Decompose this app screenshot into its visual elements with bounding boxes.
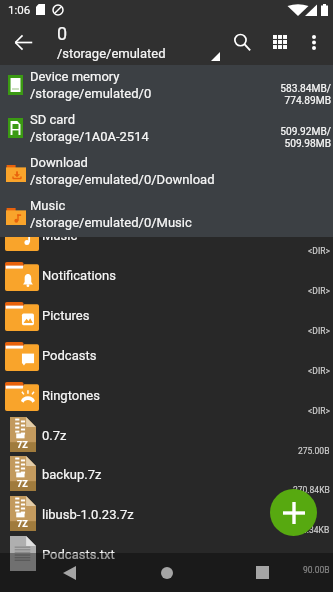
- staticText: 509.98MB: [284, 138, 331, 150]
- staticText: Device memory: [30, 69, 120, 84]
- staticText: Podcasts.txt: [42, 547, 115, 562]
- staticText: Download: [30, 155, 88, 170]
- button[interactable]: More options: [296, 19, 332, 65]
- button[interactable]: 7Z: [0, 495, 333, 535]
- staticText: 0: [57, 23, 68, 44]
- button[interactable]: SD card: [0, 108, 333, 151]
- staticText: <DIR>: [308, 366, 330, 376]
- staticText: 1:06: [8, 3, 31, 16]
- button[interactable]: View mode: [258, 19, 302, 65]
- staticText: 8.34KB: [302, 525, 330, 535]
- staticText: 509.92MB/: [280, 126, 331, 138]
- staticText: <DIR>: [308, 246, 330, 256]
- staticText: Music: [42, 228, 78, 243]
- button[interactable]: 7Z: [0, 455, 333, 495]
- button[interactable]: Podcasts: [0, 336, 333, 376]
- staticText: <DIR>: [308, 326, 330, 336]
- staticText: <DIR>: [308, 406, 330, 416]
- button[interactable]: Download: [0, 151, 333, 194]
- button[interactable]: Notifications: [0, 256, 333, 296]
- button[interactable]: 0: [46, 19, 224, 65]
- button[interactable]: Ringtones: [0, 376, 333, 416]
- staticText: 583.84MB/: [280, 83, 331, 95]
- staticText: SD card: [30, 112, 75, 127]
- staticText: Ringtones: [42, 388, 100, 403]
- button[interactable]: Back: [47, 553, 92, 592]
- staticText: Notifications: [42, 268, 116, 283]
- staticText: Pictures: [42, 308, 90, 323]
- button[interactable]: Add: [270, 489, 317, 536]
- staticText: 774.89MB: [284, 95, 331, 107]
- staticText: 275.00B: [298, 446, 330, 456]
- staticText: 90.00B: [303, 565, 330, 575]
- staticText: /storage/1A0A-2514: [30, 129, 149, 144]
- button[interactable]: Music: [0, 216, 333, 256]
- button[interactable]: Search: [220, 19, 265, 65]
- button[interactable]: Home: [144, 553, 189, 592]
- staticText: <DIR>: [308, 286, 330, 296]
- staticText: 7Z: [17, 519, 28, 530]
- staticText: 7Z: [17, 479, 28, 490]
- button[interactable]: Device memory: [0, 65, 333, 108]
- staticText: backup.7z: [42, 467, 102, 482]
- button[interactable]: Music: [0, 194, 333, 237]
- button[interactable]: Podcasts.txt: [0, 535, 333, 575]
- button[interactable]: 7Z: [0, 416, 333, 456]
- staticText: 270.84KB: [293, 485, 330, 495]
- staticText: /storage/emulated: [57, 46, 166, 61]
- staticText: libusb-1.0.23.7z: [42, 507, 134, 522]
- staticText: /storage/emulated/0/Music: [30, 215, 192, 230]
- button[interactable]: Back: [0, 19, 46, 65]
- staticText: Podcasts: [42, 348, 97, 363]
- staticText: 0.7z: [42, 428, 67, 443]
- staticText: 7Z: [17, 440, 28, 451]
- staticText: Music: [30, 198, 66, 213]
- button[interactable]: Pictures: [0, 296, 333, 336]
- staticText: /storage/emulated/0: [30, 86, 152, 101]
- button[interactable]: Recents: [240, 553, 285, 592]
- staticText: /storage/emulated/0/Download: [30, 172, 215, 187]
